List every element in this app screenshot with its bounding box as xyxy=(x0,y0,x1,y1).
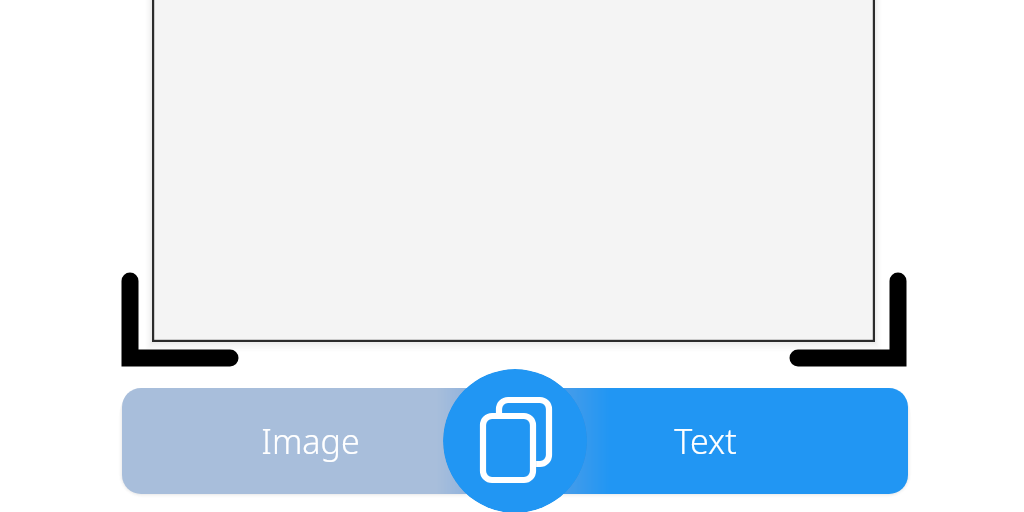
staticText: Image xyxy=(261,418,360,464)
staticText: Text xyxy=(674,418,737,464)
button[interactable]: Text xyxy=(515,388,908,494)
button[interactable]: Image xyxy=(122,388,515,494)
button[interactable]: Copy xyxy=(443,369,587,512)
